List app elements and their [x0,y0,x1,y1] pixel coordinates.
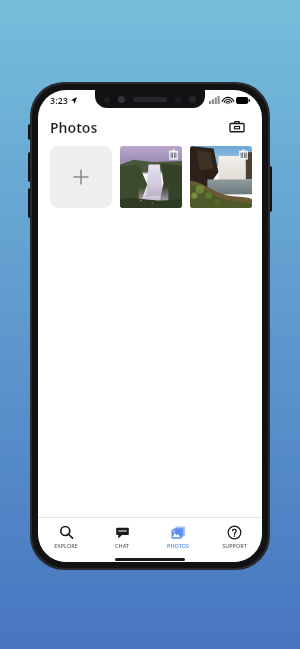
button[interactable]: CHAT [94,518,150,556]
staticText: EXPLORE [54,542,78,549]
button[interactable]: Add photo [50,146,112,208]
button[interactable]: Delete photo [167,148,180,161]
staticText: CHAT [115,542,129,549]
button[interactable]: Photo [190,146,252,208]
button[interactable]: PHOTOS [150,518,206,556]
staticText: SUPPORT [222,542,247,549]
button[interactable]: Toolbox [224,114,250,140]
staticText: 3:23 [50,94,68,106]
staticText: PHOTOS [167,542,189,549]
button[interactable]: SUPPORT [206,518,262,556]
button[interactable]: Photo [120,146,182,208]
button[interactable]: Delete photo [237,148,250,161]
button[interactable]: EXPLORE [38,518,94,556]
staticText: Photos [50,118,98,137]
